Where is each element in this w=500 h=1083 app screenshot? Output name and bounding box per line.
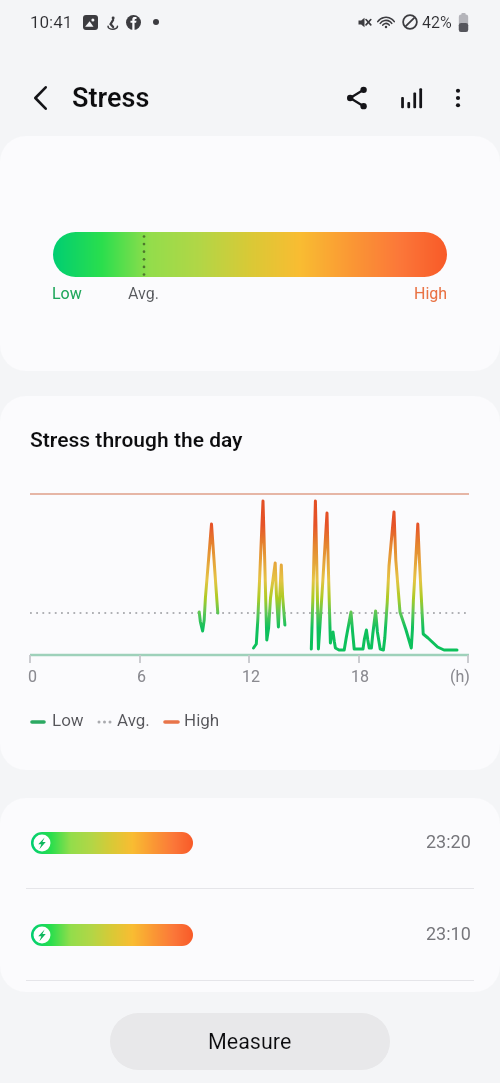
button[interactable]: 23:10 bbox=[0, 890, 500, 978]
staticText: 12 bbox=[242, 667, 260, 686]
staticText: High bbox=[414, 284, 448, 303]
button[interactable]: Measure bbox=[110, 1013, 390, 1070]
button[interactable]: Navigate up bbox=[17, 75, 63, 121]
staticText: 0 bbox=[28, 667, 37, 686]
staticText: Low bbox=[52, 284, 82, 303]
staticText: Avg. bbox=[117, 710, 150, 730]
staticText: Stress bbox=[72, 82, 150, 114]
button[interactable]: 23:20 bbox=[0, 798, 500, 886]
staticText: Measure bbox=[208, 1029, 292, 1054]
staticText: 23:10 bbox=[426, 923, 471, 944]
button[interactable]: Trends bbox=[389, 76, 433, 120]
staticText: Stress through the day bbox=[30, 428, 243, 453]
staticText: 18 bbox=[351, 667, 369, 686]
staticText: High bbox=[184, 710, 220, 730]
button[interactable]: Share bbox=[335, 76, 379, 120]
staticText: (h) bbox=[450, 667, 470, 686]
staticText: Avg. bbox=[128, 284, 159, 303]
button[interactable]: More options bbox=[436, 76, 480, 120]
staticText: 23:20 bbox=[426, 831, 471, 852]
staticText: 42% bbox=[422, 13, 452, 32]
staticText: 10:41 bbox=[30, 12, 73, 32]
staticText: 6 bbox=[137, 667, 146, 686]
staticText: Low bbox=[52, 710, 84, 730]
